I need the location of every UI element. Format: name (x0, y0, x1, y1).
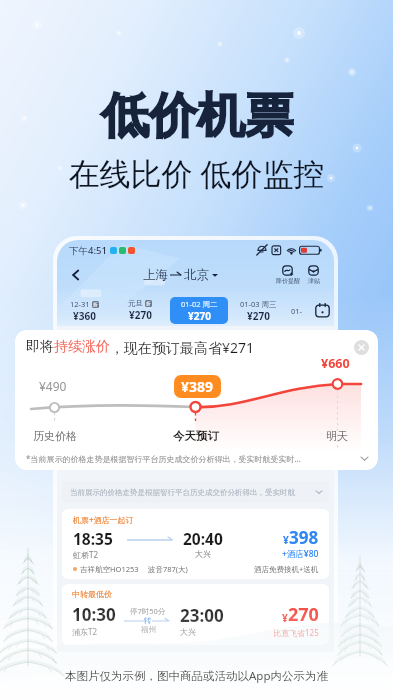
staticText: 01-03 周三 (240, 299, 277, 309)
staticText: 270 (288, 602, 319, 627)
staticText: 中转最低价 (72, 589, 112, 599)
staticText: 即将 (26, 338, 54, 356)
staticText: ，现在预订最高省¥271 (110, 338, 255, 357)
staticText: 20:40 (183, 528, 223, 549)
staticText: 比直飞省125 (273, 627, 319, 638)
staticText: 大兴 (180, 627, 196, 637)
staticText: ¥270 (188, 309, 211, 323)
staticText: 折 (146, 301, 151, 307)
staticText: *当前展示的价格走势是根据智行平台历史成交价分析得出，受实时航受实时... (26, 453, 301, 464)
staticText: 18:35 (73, 528, 113, 549)
staticText: 大兴 (195, 549, 211, 559)
staticText: 今天预订 (173, 429, 219, 443)
staticText: 元旦 (128, 299, 143, 308)
staticText: 历史价格 (33, 429, 77, 443)
button[interactable]: 降价提醒 (274, 265, 301, 285)
staticText: ¥660 (321, 355, 350, 372)
staticText: 吉祥航空HO1253 (80, 564, 139, 574)
button[interactable]: Back (65, 264, 87, 286)
staticText: ¥389 (181, 377, 214, 396)
staticText: 当前展示的价格走势是根据智行平台历史成交价分析得出，受实时航 (70, 488, 295, 497)
staticText: 折 (93, 302, 98, 308)
staticText: 01-02 周二 (181, 299, 218, 309)
staticText: +酒店¥80 (282, 548, 319, 560)
staticText: ¥270 (129, 308, 152, 322)
button[interactable]: 津贴 (302, 265, 325, 285)
button[interactable]: Calendar (310, 303, 334, 318)
staticText: 浦东T2 (72, 626, 98, 637)
staticText: 12-31 (70, 299, 90, 309)
staticText: 酒店免费接机+送机 (254, 564, 319, 574)
staticText: 上海 (143, 267, 168, 283)
staticText: ¥ (282, 611, 288, 625)
staticText: 10:30 (72, 603, 116, 626)
staticText: 低价机票 (101, 86, 293, 146)
staticText: 23:00 (180, 604, 224, 627)
staticText: 北京 (184, 267, 209, 283)
staticText: ¥270 (247, 309, 270, 323)
staticText: ¥360 (73, 309, 96, 323)
staticText: 转 (144, 616, 152, 625)
staticText: ¥490 (39, 378, 67, 394)
button[interactable]: Close (354, 340, 369, 355)
button[interactable]: 中转最低价 (62, 584, 329, 645)
button[interactable]: 01-02 周二 (170, 297, 228, 324)
button[interactable]: 12-31 (59, 297, 110, 324)
staticText: 下午4:51 (69, 244, 107, 257)
button[interactable]: 元旦 (114, 297, 166, 324)
staticText: 398 (289, 526, 319, 549)
staticText: 01- (291, 306, 302, 316)
staticText: 福州 (141, 625, 156, 634)
staticText: 虹桥T2 (73, 549, 99, 560)
button[interactable]: 机票+酒店一起订 (62, 509, 329, 579)
staticText: 明天 (326, 429, 348, 443)
staticText: 津贴 (308, 277, 320, 285)
staticText: 本图片仅为示例，图中商品或活动以App内公示为准 (65, 668, 328, 684)
button[interactable]: 01-03 周三 (232, 297, 284, 324)
staticText: 持续涨价 (54, 338, 110, 356)
staticText: ¥ (283, 533, 289, 547)
staticText: 降价提醒 (276, 277, 300, 285)
staticText: 停7时50分 (130, 606, 166, 616)
staticText: 在线比价 低价监控 (68, 152, 325, 194)
staticText: 机票+酒店一起订 (73, 514, 134, 525)
staticText: 波音787(大) (148, 564, 188, 574)
